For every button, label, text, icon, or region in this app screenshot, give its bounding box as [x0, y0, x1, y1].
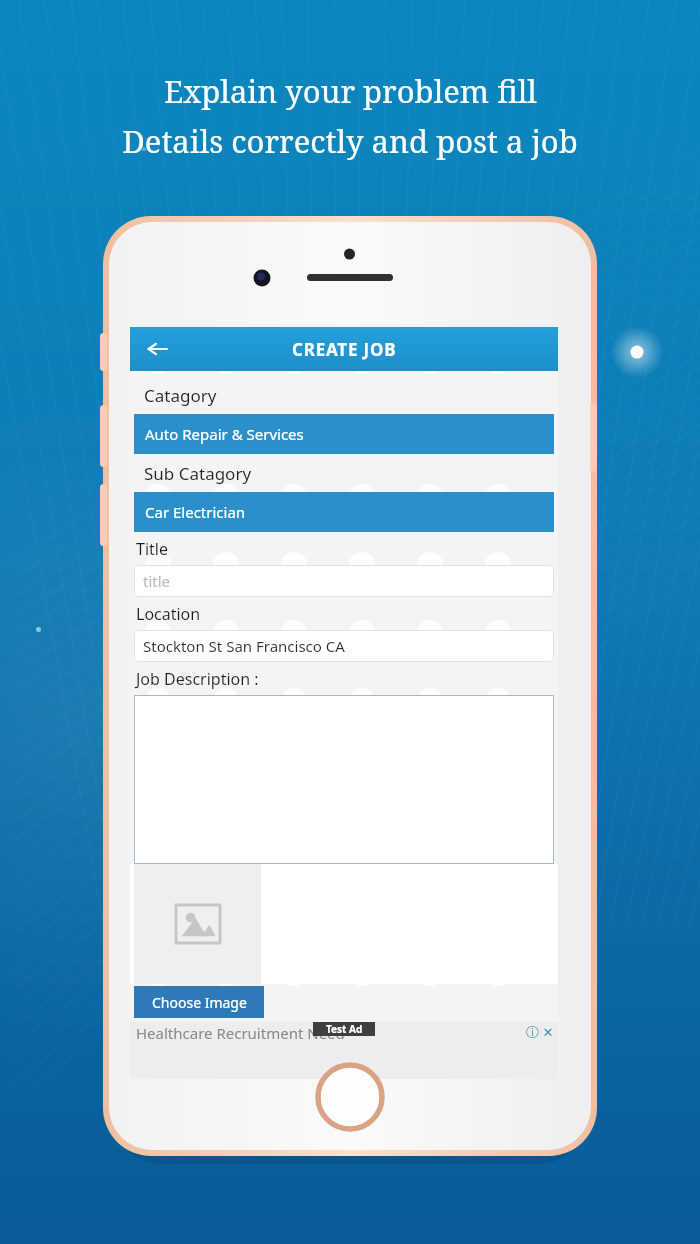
staticText: Healthcare Recruitment Need — [136, 1023, 345, 1043]
staticText: Details correctly and post a job — [122, 120, 578, 162]
button[interactable]: CREATE JOB — [130, 327, 558, 371]
staticText: Explain your problem fill — [164, 70, 537, 112]
staticText: ⓘ ✕ — [526, 1023, 554, 1041]
button[interactable]: Healthcare Recruitment Need — [130, 1022, 558, 1079]
button[interactable] — [134, 695, 554, 864]
button[interactable]: Auto Repair & Services — [134, 414, 554, 454]
button[interactable]: Car Electrician — [134, 492, 554, 532]
staticText: Title — [136, 538, 168, 560]
staticText: title — [143, 571, 171, 591]
staticText: Job Description : — [136, 668, 259, 690]
button[interactable]: Selected image preview — [134, 864, 261, 984]
staticText: Car Electrician — [145, 502, 246, 522]
staticText: Test Ad — [326, 1022, 363, 1036]
button[interactable]: Choose Image — [134, 986, 264, 1018]
button[interactable]: title — [134, 565, 554, 597]
staticText: Catagory — [144, 384, 217, 407]
staticText: CREATE JOB — [292, 338, 397, 361]
button[interactable]: Back — [140, 332, 174, 366]
staticText: Stockton St San Francisco CA — [143, 636, 345, 656]
staticText: Location — [136, 603, 201, 625]
staticText: Choose Image — [152, 993, 247, 1012]
button[interactable]: Stockton St San Francisco CA — [134, 630, 554, 662]
button[interactable]: Sub Catagory — [130, 454, 558, 492]
staticText: Sub Catagory — [144, 462, 252, 485]
button[interactable]: Catagory — [130, 376, 558, 414]
staticText: Auto Repair & Services — [145, 424, 304, 444]
